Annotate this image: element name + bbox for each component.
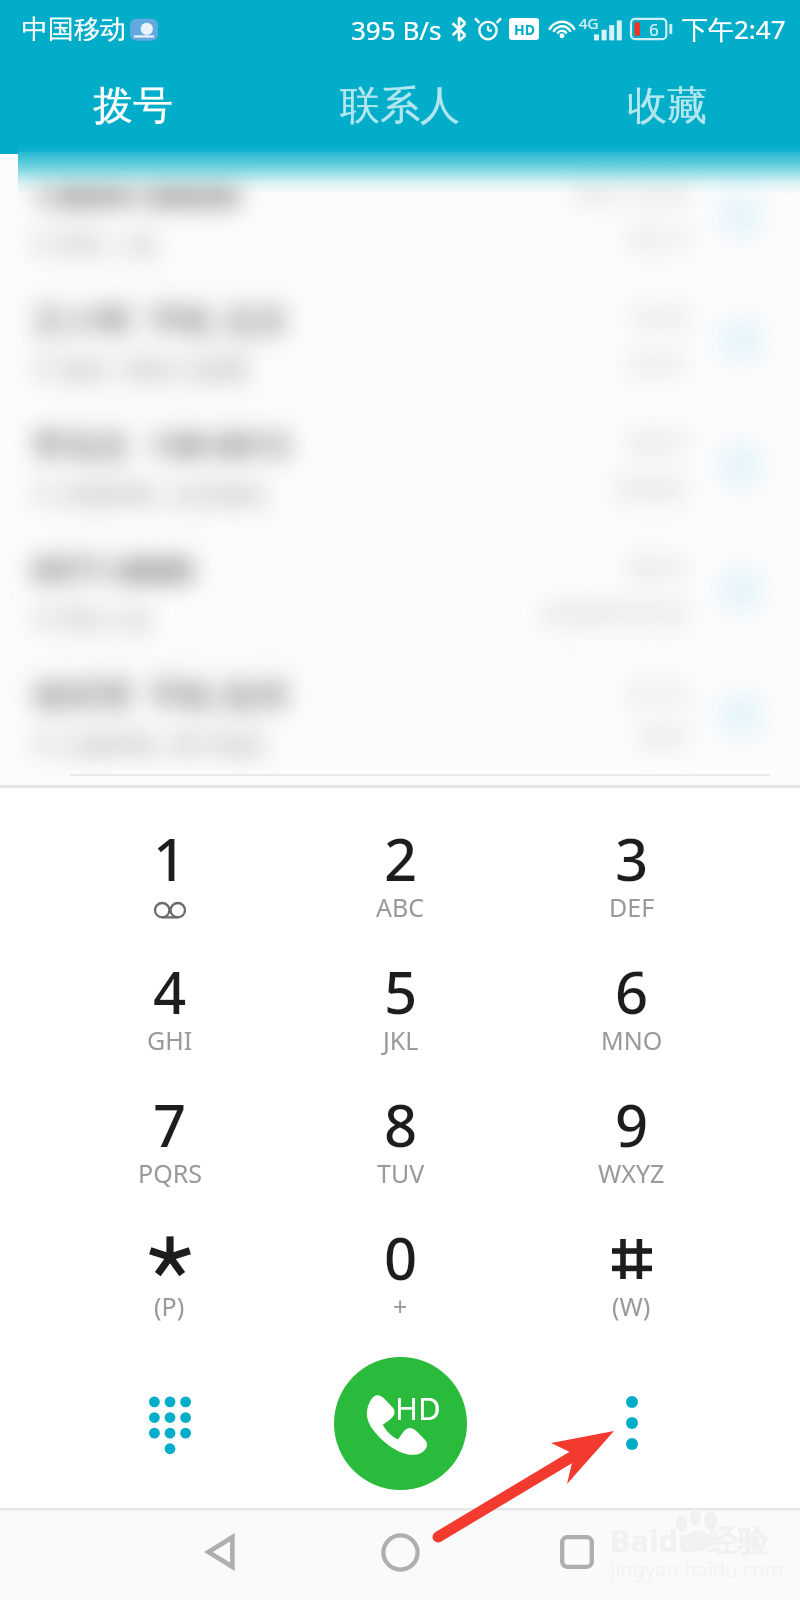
staticText: 已接来电 浙江电信 xyxy=(61,727,266,760)
button[interactable]: 收藏 xyxy=(533,62,800,148)
button[interactable]: 7 xyxy=(54,1085,285,1201)
button[interactable]: Home xyxy=(370,1522,430,1582)
staticText: 9 xyxy=(615,1085,649,1164)
staticText: 13800138000 xyxy=(32,172,240,217)
button[interactable]: 0 xyxy=(285,1218,516,1334)
staticText: 李先生 138 0013 xyxy=(32,422,289,467)
button[interactable]: 4 xyxy=(54,952,285,1068)
staticText: (W) xyxy=(612,1289,651,1323)
staticText: ABC xyxy=(376,890,425,924)
staticText: 下午2:47 xyxy=(682,11,786,47)
button[interactable]: 联系人 xyxy=(266,62,533,148)
button[interactable]: (P) xyxy=(54,1218,285,1334)
staticText: 6 xyxy=(649,18,659,41)
staticText: (P) xyxy=(154,1289,185,1323)
button[interactable]: Keypad xyxy=(54,1334,285,1512)
staticText: PQRS xyxy=(138,1156,202,1190)
staticText: HD xyxy=(395,1387,441,1429)
staticText: HD xyxy=(514,20,535,39)
staticText: 2 xyxy=(384,819,418,898)
button[interactable]: Call HD xyxy=(334,1357,467,1490)
button[interactable]: 9 xyxy=(516,1085,747,1201)
button[interactable]: 6 xyxy=(516,952,747,1068)
staticText: 4G xyxy=(579,13,599,33)
button[interactable]: Back xyxy=(192,1522,252,1582)
staticText: TUV xyxy=(377,1156,425,1190)
staticText: 张经理 手机 杭州 xyxy=(32,672,289,717)
staticText: 6 xyxy=(615,952,649,1031)
staticText: 未接来电 北京移动 xyxy=(61,477,266,510)
staticText: 7 xyxy=(153,1085,187,1164)
staticText: GHI xyxy=(147,1023,193,1057)
button[interactable]: More options xyxy=(516,1334,747,1512)
button[interactable]: Recents xyxy=(547,1522,607,1582)
staticText: 1 xyxy=(153,819,187,898)
button[interactable]: 拨号 xyxy=(0,62,266,148)
staticText: 王小明 手机 北京 xyxy=(32,297,289,342)
staticText: Baidu 经验 xyxy=(610,1519,769,1561)
staticText: WXYZ xyxy=(598,1156,665,1190)
button[interactable]: 3 xyxy=(516,819,747,935)
button[interactable]: 8 xyxy=(285,1085,516,1201)
staticText: 呼出 5次 xyxy=(61,602,153,635)
staticText: 昨天 18:24 xyxy=(577,177,688,208)
staticText: 8 xyxy=(384,1085,418,1164)
staticText: 5 xyxy=(384,952,418,1031)
staticText: 拨号 xyxy=(93,80,173,130)
staticText: 联系人 xyxy=(340,80,460,130)
staticText: DEF xyxy=(609,890,655,924)
staticText: 收藏 xyxy=(627,80,707,130)
staticText: 0571-8888 xyxy=(32,547,194,592)
button[interactable]: Call xyxy=(285,1334,516,1512)
staticText: 395 B/s xyxy=(351,12,442,47)
staticText: 3 xyxy=(615,819,649,898)
staticText: 中国移动 xyxy=(22,13,126,46)
staticText: + xyxy=(393,1289,408,1323)
button[interactable]: 2 xyxy=(285,819,516,935)
button[interactable]: 5 xyxy=(285,952,516,1068)
staticText: 呼出 2次 xyxy=(61,227,160,260)
staticText: 4 xyxy=(153,952,187,1031)
button[interactable]: 1 xyxy=(54,819,285,935)
staticText: 0 xyxy=(384,1218,418,1297)
button[interactable]: (W) xyxy=(516,1218,747,1334)
staticText: 移动 来电 已接通 xyxy=(61,352,248,385)
staticText: JKL xyxy=(383,1023,419,1057)
staticText: MNO xyxy=(601,1023,663,1057)
